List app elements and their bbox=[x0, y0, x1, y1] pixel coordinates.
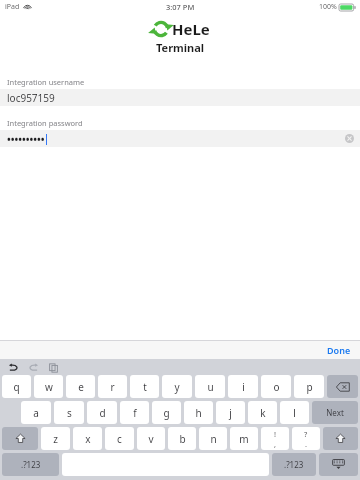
button[interactable]: p bbox=[294, 375, 324, 398]
staticText: e bbox=[78, 380, 84, 394]
staticText: , bbox=[274, 439, 277, 449]
staticText: ? bbox=[304, 429, 308, 439]
staticText: v bbox=[148, 432, 154, 446]
button[interactable]: .?123 bbox=[272, 453, 316, 476]
button[interactable]: i bbox=[228, 375, 258, 398]
button[interactable]: g bbox=[152, 401, 181, 424]
button[interactable]: j bbox=[216, 401, 245, 424]
staticText: x bbox=[85, 432, 91, 446]
button[interactable]: s bbox=[54, 401, 84, 424]
staticText: loc957159 bbox=[7, 91, 55, 105]
button[interactable]: z bbox=[41, 427, 70, 450]
button[interactable]: e bbox=[66, 375, 95, 398]
staticText: u bbox=[207, 380, 214, 394]
button[interactable]: m bbox=[230, 427, 258, 450]
staticText: iPad bbox=[5, 2, 20, 12]
button[interactable]: Shift bbox=[323, 427, 358, 450]
button[interactable]: Clear text bbox=[345, 134, 354, 143]
staticText: •••••••••• bbox=[7, 132, 45, 146]
staticText: j bbox=[229, 406, 232, 420]
staticText: f bbox=[133, 406, 137, 420]
button[interactable]: u bbox=[195, 375, 225, 398]
staticText: g bbox=[163, 406, 170, 420]
button[interactable]: Next bbox=[312, 401, 358, 424]
staticText: h bbox=[195, 406, 202, 420]
button[interactable]: Backspace bbox=[327, 375, 358, 398]
button[interactable]: Shift bbox=[2, 427, 38, 450]
button[interactable]: b bbox=[168, 427, 196, 450]
button[interactable]: loc957159 bbox=[0, 89, 360, 106]
button[interactable]: t bbox=[130, 375, 159, 398]
staticText: o bbox=[273, 380, 280, 394]
button[interactable]: Hide keyboard bbox=[319, 453, 358, 476]
button[interactable]: k bbox=[248, 401, 277, 424]
staticText: d bbox=[99, 406, 106, 420]
button[interactable]: ! bbox=[261, 427, 289, 450]
button[interactable]: r bbox=[98, 375, 127, 398]
staticText: HeLe bbox=[172, 19, 210, 39]
button[interactable]: l bbox=[280, 401, 309, 424]
staticText: Integration password bbox=[7, 118, 83, 128]
button[interactable]: o bbox=[261, 375, 291, 398]
button[interactable]: Redo bbox=[27, 361, 40, 374]
button[interactable]: ? bbox=[292, 427, 320, 450]
staticText: l bbox=[293, 406, 296, 420]
staticText: Done bbox=[327, 344, 351, 356]
staticText: i bbox=[242, 380, 245, 394]
staticText: z bbox=[53, 432, 58, 446]
staticText: k bbox=[260, 406, 266, 420]
button[interactable]: f bbox=[120, 401, 149, 424]
staticText: 3:07 PM bbox=[166, 2, 195, 12]
staticText: . bbox=[305, 439, 308, 449]
staticText: w bbox=[45, 380, 53, 394]
staticText: Terminal bbox=[156, 40, 205, 55]
staticText: s bbox=[67, 406, 72, 420]
staticText: .?123 bbox=[284, 459, 304, 470]
staticText: r bbox=[110, 380, 115, 394]
staticText: Integration username bbox=[7, 77, 85, 87]
staticText: q bbox=[13, 380, 20, 394]
button[interactable]: Done bbox=[324, 342, 354, 358]
staticText: 100% bbox=[319, 2, 337, 12]
staticText: p bbox=[306, 380, 313, 394]
staticText: t bbox=[143, 380, 147, 394]
staticText: ! bbox=[274, 429, 277, 439]
button[interactable]: Undo bbox=[7, 361, 20, 374]
button[interactable]: h bbox=[184, 401, 213, 424]
button[interactable]: a bbox=[21, 401, 51, 424]
staticText: n bbox=[210, 432, 217, 446]
button[interactable]: Paste bbox=[47, 361, 60, 374]
button[interactable]: n bbox=[199, 427, 227, 450]
staticText: .?123 bbox=[21, 459, 41, 470]
button[interactable]: .?123 bbox=[2, 453, 59, 476]
button[interactable]: c bbox=[105, 427, 134, 450]
staticText: b bbox=[179, 432, 186, 446]
staticText: m bbox=[239, 432, 249, 446]
button[interactable]: q bbox=[2, 375, 31, 398]
staticText: a bbox=[33, 406, 39, 420]
staticText: y bbox=[174, 380, 180, 394]
button[interactable]: w bbox=[34, 375, 63, 398]
button[interactable]: •••••••••• bbox=[0, 130, 360, 147]
button[interactable]: x bbox=[73, 427, 102, 450]
staticText: c bbox=[117, 432, 122, 446]
button[interactable]: d bbox=[87, 401, 117, 424]
other: HeLe logo bbox=[151, 19, 171, 39]
staticText: Next bbox=[326, 407, 344, 418]
button[interactable]: v bbox=[137, 427, 165, 450]
button[interactable]: y bbox=[162, 375, 192, 398]
